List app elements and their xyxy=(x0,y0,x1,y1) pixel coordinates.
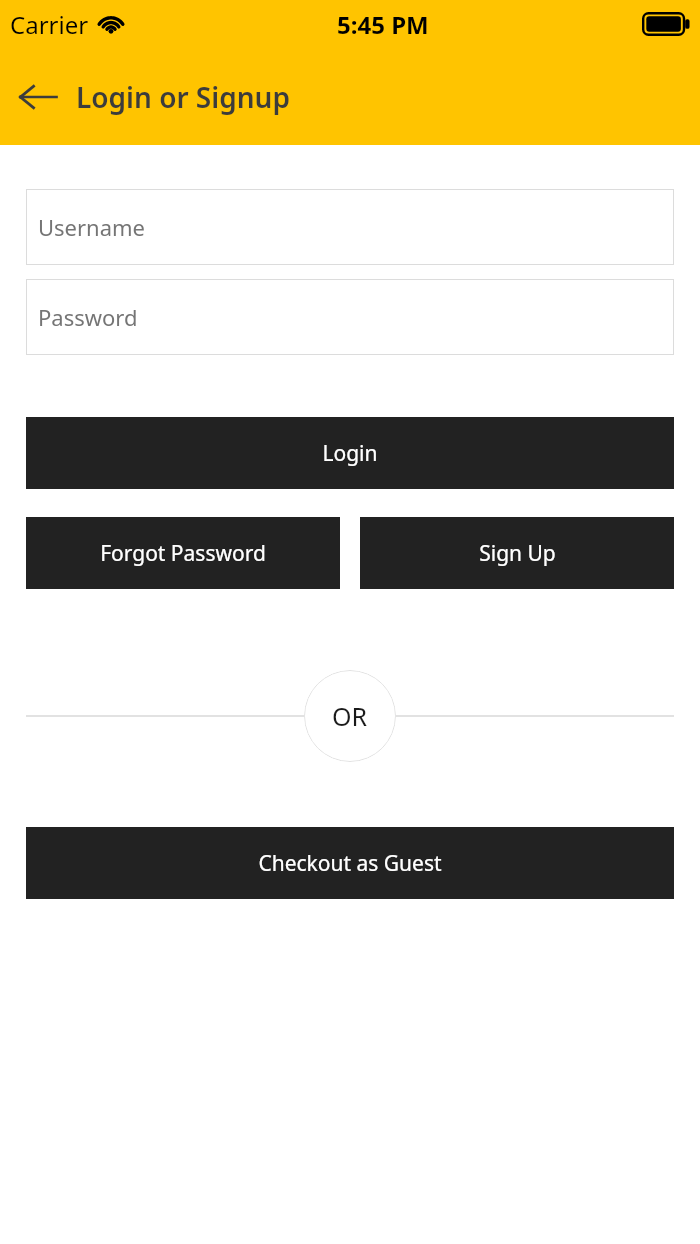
staticText: Password xyxy=(38,302,138,332)
staticText: Login xyxy=(322,439,378,468)
staticText: Username xyxy=(38,212,146,242)
staticText: Carrier xyxy=(10,8,89,41)
staticText: Login or Signup xyxy=(76,78,290,116)
staticText: Sign Up xyxy=(479,539,556,568)
button[interactable]: Sign Up xyxy=(360,517,674,589)
staticText: Forgot Password xyxy=(100,539,266,568)
button[interactable]: Password xyxy=(26,279,674,355)
button[interactable]: Checkout as Guest xyxy=(26,827,674,899)
button[interactable]: Forgot Password xyxy=(26,517,340,589)
button[interactable]: Login xyxy=(26,417,674,489)
staticText: 5:45 PM xyxy=(337,8,429,41)
staticText: OR xyxy=(332,699,368,733)
staticText: Checkout as Guest xyxy=(258,849,442,878)
button[interactable]: Back xyxy=(0,62,76,132)
button[interactable]: Username xyxy=(26,189,674,265)
